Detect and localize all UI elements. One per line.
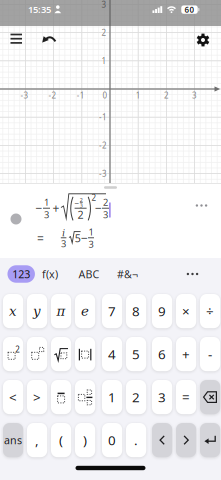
button[interactable]: ans [3, 423, 23, 457]
staticText: 5 [132, 345, 140, 363]
staticText: -3 [20, 90, 28, 101]
staticText: . [134, 431, 138, 449]
button[interactable]: x [3, 294, 23, 328]
button[interactable] [27, 337, 47, 371]
button[interactable]: 2 [126, 380, 146, 414]
staticText: f(x) [42, 267, 58, 281]
staticText: − [95, 200, 102, 216]
staticText: 123 [12, 267, 30, 281]
staticText: 3 [88, 238, 93, 250]
button[interactable]: f(x) [35, 265, 65, 283]
button[interactable] [0, 0, 221, 480]
staticText: 3 [44, 208, 49, 221]
staticText: ( [59, 431, 63, 449]
staticText: 3 [103, 208, 108, 221]
staticText: -1 [77, 90, 85, 101]
button[interactable]: 2 [3, 337, 23, 371]
button[interactable]: π [51, 294, 71, 328]
button[interactable]: #&¬ [112, 265, 142, 283]
button[interactable]: 4 [102, 337, 122, 371]
staticText: y [33, 303, 41, 319]
button[interactable]: ) [75, 423, 95, 457]
staticText: = [182, 388, 190, 406]
button[interactable]: ABC [74, 265, 104, 283]
button[interactable]: ( [51, 423, 71, 457]
staticText: x [9, 303, 17, 319]
button[interactable]: y [27, 294, 47, 328]
staticText: 0 [102, 90, 107, 101]
staticText: 2 [132, 388, 140, 406]
staticText: < [9, 388, 17, 406]
staticText: 2 [103, 196, 108, 208]
staticText: ) [83, 431, 87, 449]
button[interactable]: 6 [152, 337, 172, 371]
staticText: − [74, 197, 79, 208]
button[interactable] [191, 197, 211, 213]
button[interactable]: e [75, 294, 95, 328]
staticText: 2 [80, 196, 83, 204]
button[interactable]: > [27, 380, 47, 414]
button[interactable] [200, 423, 220, 457]
staticText: ÷ [206, 302, 214, 320]
staticText: , [35, 431, 39, 449]
button[interactable] [0, 0, 221, 480]
staticText: 3 [80, 202, 83, 209]
staticText: 0 [108, 431, 116, 449]
button[interactable] [75, 337, 95, 371]
staticText: 15:35 [28, 3, 51, 16]
button[interactable]: = [176, 380, 196, 414]
button[interactable]: 1 [102, 380, 122, 414]
button[interactable] [51, 380, 71, 414]
staticText: 4 [108, 345, 116, 363]
staticText: -3 [99, 168, 107, 179]
staticText: 5 [75, 231, 81, 245]
button[interactable]: ÷ [200, 294, 220, 328]
button[interactable] [0, 0, 221, 480]
staticText: ans [4, 433, 22, 447]
button[interactable]: × [176, 294, 196, 328]
button[interactable]: 3 [152, 380, 172, 414]
button[interactable]: 5 [126, 337, 146, 371]
staticText: e [81, 303, 89, 319]
staticText: 9 [158, 302, 166, 320]
staticText: 1 [44, 196, 49, 208]
staticText: 3 [101, 0, 106, 10]
staticText: − [35, 200, 42, 216]
staticText: ABC [78, 267, 99, 281]
button[interactable]: < [3, 380, 23, 414]
staticText: 2 [101, 27, 106, 38]
button[interactable]: . [126, 423, 146, 457]
staticText: -1 [99, 112, 107, 122]
staticText: #&¬ [117, 267, 138, 281]
staticText: 60 [184, 4, 194, 15]
staticText: 2 [15, 344, 20, 355]
staticText: = [37, 230, 44, 246]
button[interactable]: 123 [7, 265, 35, 283]
button[interactable]: 7 [102, 294, 122, 328]
staticText: -2 [49, 90, 57, 101]
staticText: + [182, 345, 190, 363]
button[interactable] [51, 337, 71, 371]
button[interactable]: 0 [102, 423, 122, 457]
staticText: - [208, 345, 212, 363]
staticText: 3 [101, 0, 106, 10]
button[interactable]: , [27, 423, 47, 457]
button[interactable]: + [176, 337, 196, 371]
staticText: 1 [101, 55, 106, 66]
button[interactable] [10, 213, 21, 224]
button[interactable] [75, 380, 95, 414]
staticText: 3 [158, 388, 166, 406]
staticText: 1 [108, 388, 116, 406]
staticText: + [52, 200, 59, 216]
button[interactable] [152, 423, 172, 457]
button[interactable]: 8 [126, 294, 146, 328]
staticText: 2 [164, 90, 169, 101]
button[interactable]: - [200, 337, 220, 371]
staticText: 1 [136, 90, 141, 101]
staticText: 2 [77, 207, 83, 222]
button[interactable] [176, 423, 196, 457]
button[interactable] [200, 380, 220, 414]
button[interactable]: 9 [152, 294, 172, 328]
button[interactable] [177, 265, 207, 283]
staticText: 7 [108, 302, 116, 320]
